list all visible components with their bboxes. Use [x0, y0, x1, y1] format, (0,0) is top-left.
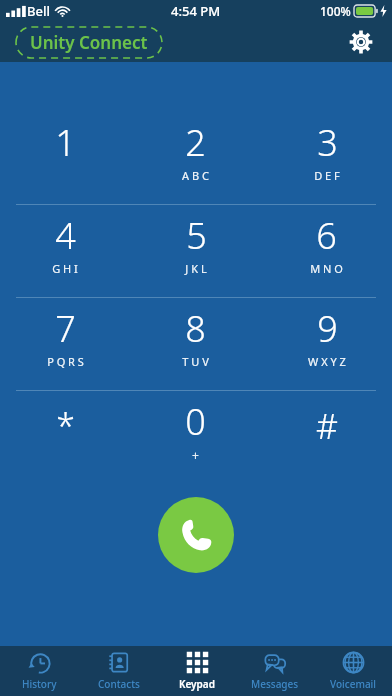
- button[interactable]: 0: [130, 391, 261, 483]
- button[interactable]: Settings: [344, 25, 378, 59]
- button[interactable]: 6: [261, 205, 392, 297]
- staticText: 7: [55, 304, 76, 353]
- button[interactable]: 7: [0, 298, 130, 390]
- staticText: Bell: [27, 2, 50, 20]
- button[interactable]: Keypad: [158, 646, 236, 696]
- staticText: 8: [185, 304, 206, 353]
- staticText: #: [316, 403, 338, 449]
- staticText: 3: [317, 118, 338, 167]
- staticText: 9: [317, 304, 338, 353]
- button[interactable]: Call: [158, 497, 234, 573]
- button[interactable]: 4: [0, 205, 130, 297]
- staticText: 1: [55, 118, 76, 167]
- button[interactable]: Messages: [236, 646, 314, 696]
- staticText: J K L: [185, 261, 207, 276]
- staticText: A B C: [182, 168, 209, 183]
- button[interactable]: 3: [261, 112, 392, 204]
- staticText: Unity Connect: [30, 31, 148, 54]
- staticText: History: [22, 677, 57, 691]
- button[interactable]: #: [261, 391, 392, 483]
- staticText: 2: [185, 118, 206, 167]
- staticText: P Q R S: [47, 354, 84, 369]
- staticText: Voicemail: [330, 677, 376, 691]
- staticText: 6: [316, 211, 337, 260]
- button[interactable]: 9: [261, 298, 392, 390]
- staticText: 4: [55, 211, 76, 260]
- button[interactable]: Unity Connect: [16, 27, 162, 58]
- staticText: 0: [185, 397, 206, 446]
- button[interactable]: *: [0, 391, 130, 483]
- button[interactable]: Contacts: [79, 646, 158, 696]
- button[interactable]: Voicemail: [314, 646, 392, 696]
- staticText: G H I: [52, 261, 78, 276]
- button[interactable]: 5: [130, 205, 261, 297]
- staticText: *: [56, 403, 75, 449]
- staticText: 4:54 PM: [171, 2, 221, 20]
- staticText: W X Y Z: [308, 354, 346, 369]
- staticText: T U V: [182, 354, 209, 369]
- staticText: 100%: [320, 3, 351, 19]
- staticText: +: [192, 447, 199, 463]
- staticText: 5: [186, 211, 207, 260]
- staticText: D E F: [314, 168, 340, 183]
- staticText: M N O: [310, 261, 343, 276]
- button[interactable]: 8: [130, 298, 261, 390]
- staticText: Keypad: [179, 677, 215, 691]
- button[interactable]: 1: [0, 112, 130, 204]
- staticText: Contacts: [98, 677, 140, 691]
- staticText: Messages: [251, 677, 299, 691]
- button[interactable]: History: [0, 646, 79, 696]
- button[interactable]: 2: [130, 112, 261, 204]
